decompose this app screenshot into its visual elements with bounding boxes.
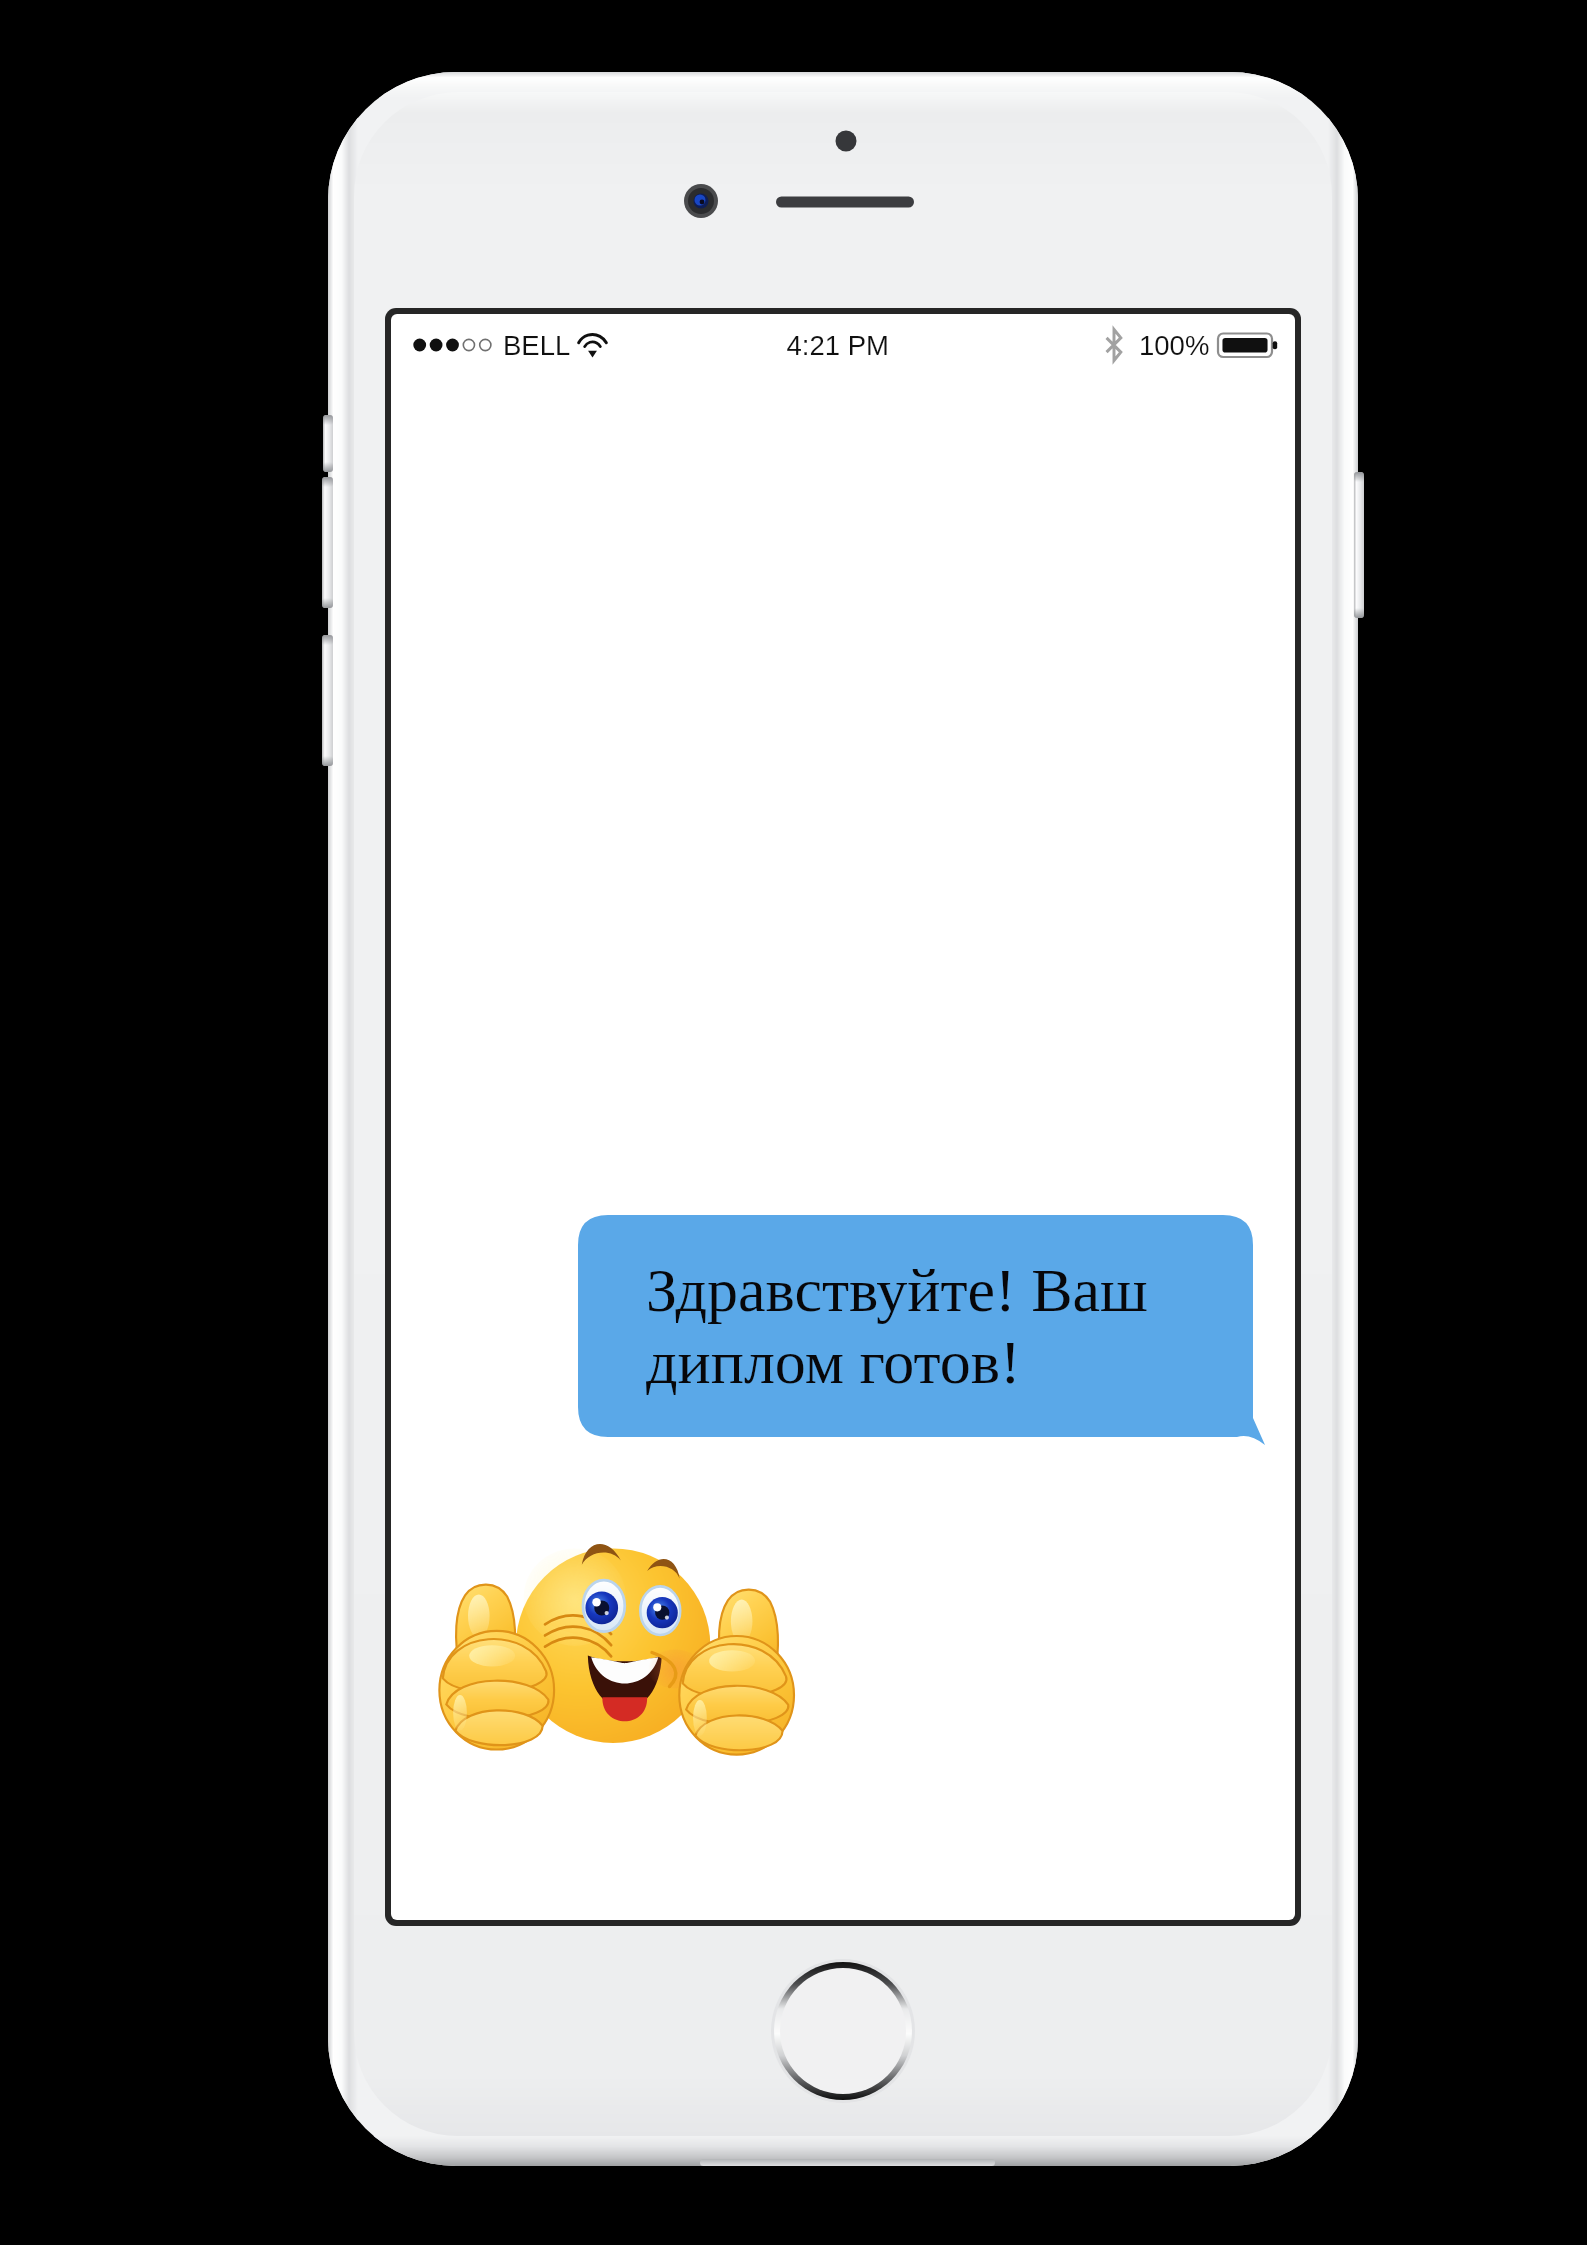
button[interactable]: Здравствуйте! Ваш диплом готов! xyxy=(578,1215,1253,1438)
button[interactable]: Power xyxy=(1352,472,1368,618)
button[interactable]: Home xyxy=(774,1962,912,2100)
button[interactable]: Ring silent switch xyxy=(320,415,336,472)
button[interactable]: Volume down xyxy=(320,635,336,766)
button[interactable]: Volume up xyxy=(320,477,336,608)
button[interactable]: Thumbs up smiley sticker xyxy=(439,1538,790,1750)
